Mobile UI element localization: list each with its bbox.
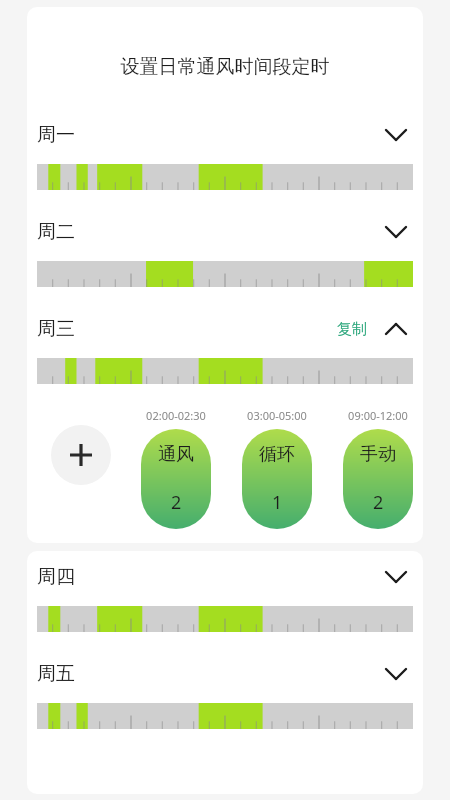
button[interactable]: Expand 周五	[379, 657, 413, 691]
staticText: 周四	[37, 565, 75, 589]
button[interactable]: Timeline	[37, 606, 413, 632]
staticText: 设置日常通风时间段定时	[37, 55, 413, 79]
staticText: 周二	[37, 220, 75, 244]
button[interactable]: Timeline	[37, 261, 413, 287]
button[interactable]: Expand 周四	[379, 560, 413, 594]
staticText: 通风	[158, 443, 194, 466]
staticText: 2	[373, 490, 384, 515]
button[interactable]: Timeline	[37, 358, 413, 384]
staticText: 02:00-02:30	[146, 408, 206, 423]
staticText: 手动	[360, 443, 396, 466]
button[interactable]: 手动	[343, 429, 413, 529]
staticText: 09:00-12:00	[348, 408, 408, 423]
button[interactable]: Timeline	[37, 703, 413, 729]
button[interactable]: Collapse 周三	[379, 312, 413, 346]
staticText: 2	[171, 490, 182, 515]
button[interactable]: Expand 周二	[379, 215, 413, 249]
staticText: 循环	[259, 443, 295, 466]
staticText: 周五	[37, 662, 75, 686]
staticText: 1	[272, 490, 283, 515]
button[interactable]: Add time segment	[51, 425, 111, 485]
button[interactable]: 复制	[333, 316, 371, 343]
staticText: 复制	[337, 320, 367, 339]
staticText: 周三	[37, 317, 75, 341]
staticText: 周一	[37, 123, 75, 147]
staticText: 03:00-05:00	[247, 408, 307, 423]
button[interactable]: 通风	[141, 429, 211, 529]
button[interactable]: Expand 周一	[379, 118, 413, 152]
button[interactable]: 循环	[242, 429, 312, 529]
button[interactable]: Timeline	[37, 164, 413, 190]
